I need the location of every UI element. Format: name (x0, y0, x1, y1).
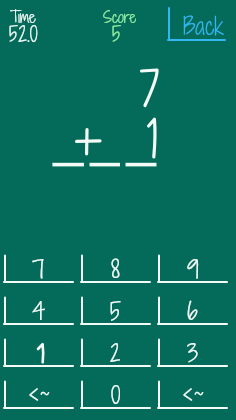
staticText: Time (10, 6, 36, 28)
button[interactable]: 8 (81, 241, 150, 283)
button[interactable]: <~ (158, 367, 227, 409)
button[interactable]: 6 (158, 283, 227, 325)
staticText: <~ (182, 377, 204, 412)
button[interactable]: 7 (4, 241, 73, 283)
staticText: 9 (187, 251, 199, 286)
button[interactable] (4, 325, 73, 367)
staticText: 2 (110, 335, 121, 370)
button[interactable]: 0 (81, 367, 150, 409)
button[interactable]: 4 (4, 283, 73, 325)
staticText: 7 (32, 251, 45, 286)
button[interactable]: 9 (158, 241, 227, 283)
staticText: 4 (32, 293, 46, 328)
staticText: 8 (111, 251, 120, 286)
button[interactable]: <~ (4, 367, 73, 409)
staticText: <~ (28, 377, 50, 412)
staticText: 3 (187, 335, 199, 370)
button[interactable]: Back (168, 8, 225, 41)
staticText: Score (103, 6, 137, 28)
staticText: Back (183, 9, 224, 42)
staticText: 52.0 (9, 20, 38, 49)
staticText: 6 (187, 293, 198, 328)
button[interactable]: 2 (81, 325, 150, 367)
button[interactable]: 5 (81, 283, 150, 325)
staticText: 0 (111, 377, 121, 412)
staticText: 5 (110, 293, 121, 328)
button[interactable]: 3 (158, 325, 227, 367)
staticText: 5 (112, 20, 122, 49)
